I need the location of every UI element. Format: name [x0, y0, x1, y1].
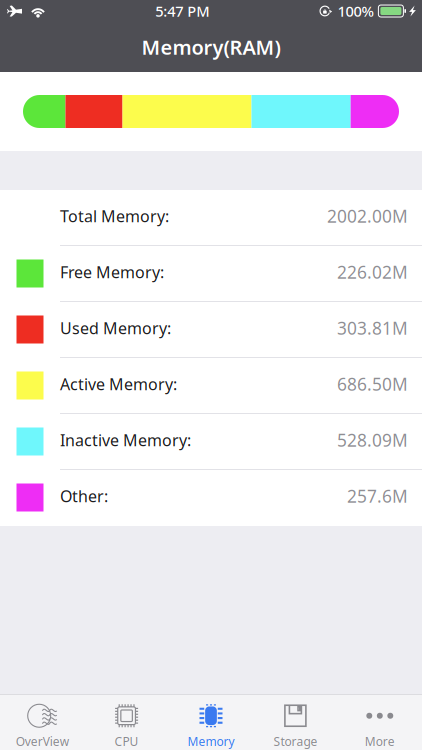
staticText: Memory(RAM): [141, 34, 280, 60]
button[interactable]: Used Memory:: [0, 302, 422, 358]
button[interactable]: OverView: [0, 695, 84, 750]
staticText: Memory: [187, 733, 234, 749]
button[interactable]: Active Memory:: [0, 358, 422, 414]
button[interactable]: Total Memory:: [0, 190, 422, 246]
staticText: 528.09M: [337, 428, 408, 451]
button[interactable]: Memory: [169, 695, 253, 750]
staticText: Storage: [273, 733, 317, 749]
staticText: 5:47 PM: [155, 1, 209, 21]
staticText: Free Memory:: [60, 261, 164, 283]
staticText: 2002.00M: [327, 204, 408, 227]
staticText: 100%: [337, 1, 373, 21]
staticText: More: [365, 733, 395, 749]
button[interactable]: CPU: [84, 695, 169, 750]
staticText: 686.50M: [337, 372, 408, 395]
staticText: 226.02M: [337, 260, 408, 283]
button[interactable]: More: [338, 695, 422, 750]
staticText: Total Memory:: [60, 205, 169, 227]
staticText: Other:: [60, 485, 108, 507]
staticText: Active Memory:: [60, 373, 177, 395]
staticText: OverView: [16, 733, 69, 749]
staticText: Inactive Memory:: [60, 429, 191, 451]
staticText: CPU: [115, 733, 139, 749]
button[interactable]: Inactive Memory:: [0, 414, 422, 470]
staticText: 303.81M: [337, 316, 408, 339]
button[interactable]: Other:: [0, 470, 422, 526]
button[interactable]: Storage: [253, 695, 338, 750]
staticText: 257.6M: [347, 484, 408, 507]
button[interactable]: Free Memory:: [0, 246, 422, 302]
staticText: Used Memory:: [60, 317, 171, 339]
